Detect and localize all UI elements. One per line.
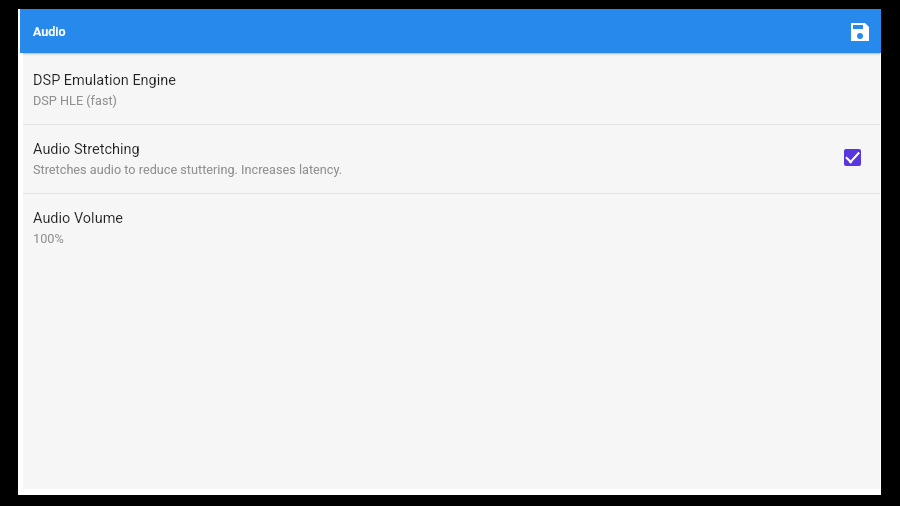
staticText: Audio (33, 24, 66, 39)
button[interactable]: Save (841, 13, 877, 49)
button[interactable]: Audio Volume (23, 194, 880, 262)
button[interactable]: DSP Emulation Engine (23, 56, 880, 124)
staticText: DSP HLE (fast) (33, 93, 118, 108)
staticText: DSP Emulation Engine (33, 72, 176, 89)
staticText: Audio Volume (33, 210, 124, 227)
button[interactable]: Audio Stretching toggle (834, 139, 870, 175)
staticText: Audio Stretching (33, 141, 140, 158)
staticText: Stretches audio to reduce stuttering. In… (33, 162, 343, 177)
staticText: 100% (33, 231, 64, 246)
button[interactable]: Audio Stretching (23, 125, 880, 193)
